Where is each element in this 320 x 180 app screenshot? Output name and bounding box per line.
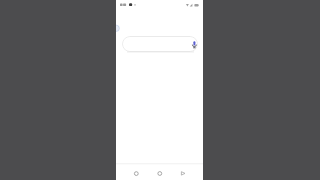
- button[interactable]: [153, 167, 166, 180]
- button[interactable]: [130, 167, 143, 180]
- button[interactable]: [116, 25, 120, 32]
- button[interactable]: [122, 36, 198, 52]
- button[interactable]: [177, 167, 190, 180]
